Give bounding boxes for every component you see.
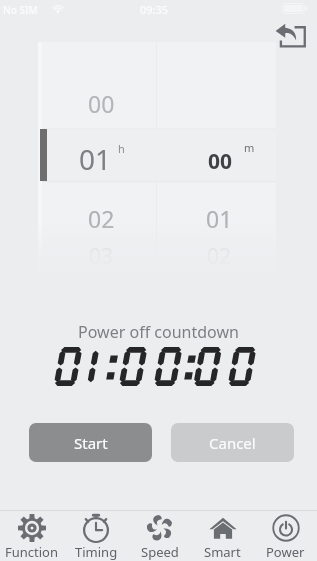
staticText: Cancel xyxy=(209,433,256,453)
staticText: Start xyxy=(74,433,108,453)
staticText: m xyxy=(244,140,255,155)
button[interactable]: Timing xyxy=(64,511,128,561)
staticText: Function xyxy=(5,543,59,561)
staticText: Smart xyxy=(204,543,241,561)
staticText: 09:35 xyxy=(140,2,169,17)
button[interactable]: Back xyxy=(275,20,306,48)
staticText: 01 xyxy=(79,140,112,176)
button[interactable]: Power xyxy=(254,511,317,561)
staticText: h xyxy=(118,141,125,156)
staticText: 00 xyxy=(88,88,115,119)
button[interactable]: Speed xyxy=(128,511,191,561)
staticText: 02 xyxy=(88,203,115,234)
staticText: Speed xyxy=(141,543,179,561)
staticText: 00 xyxy=(208,147,233,176)
button[interactable]: Start xyxy=(29,423,152,462)
staticText: Timing xyxy=(75,543,118,561)
staticText: Power off countdown xyxy=(0,321,317,343)
staticText: 01 xyxy=(206,203,233,234)
button[interactable]: Smart xyxy=(191,511,254,561)
button[interactable]: Cancel xyxy=(171,423,294,462)
button[interactable]: Function xyxy=(0,511,64,561)
staticText: No SIM xyxy=(3,3,38,17)
staticText: Power xyxy=(266,543,305,561)
